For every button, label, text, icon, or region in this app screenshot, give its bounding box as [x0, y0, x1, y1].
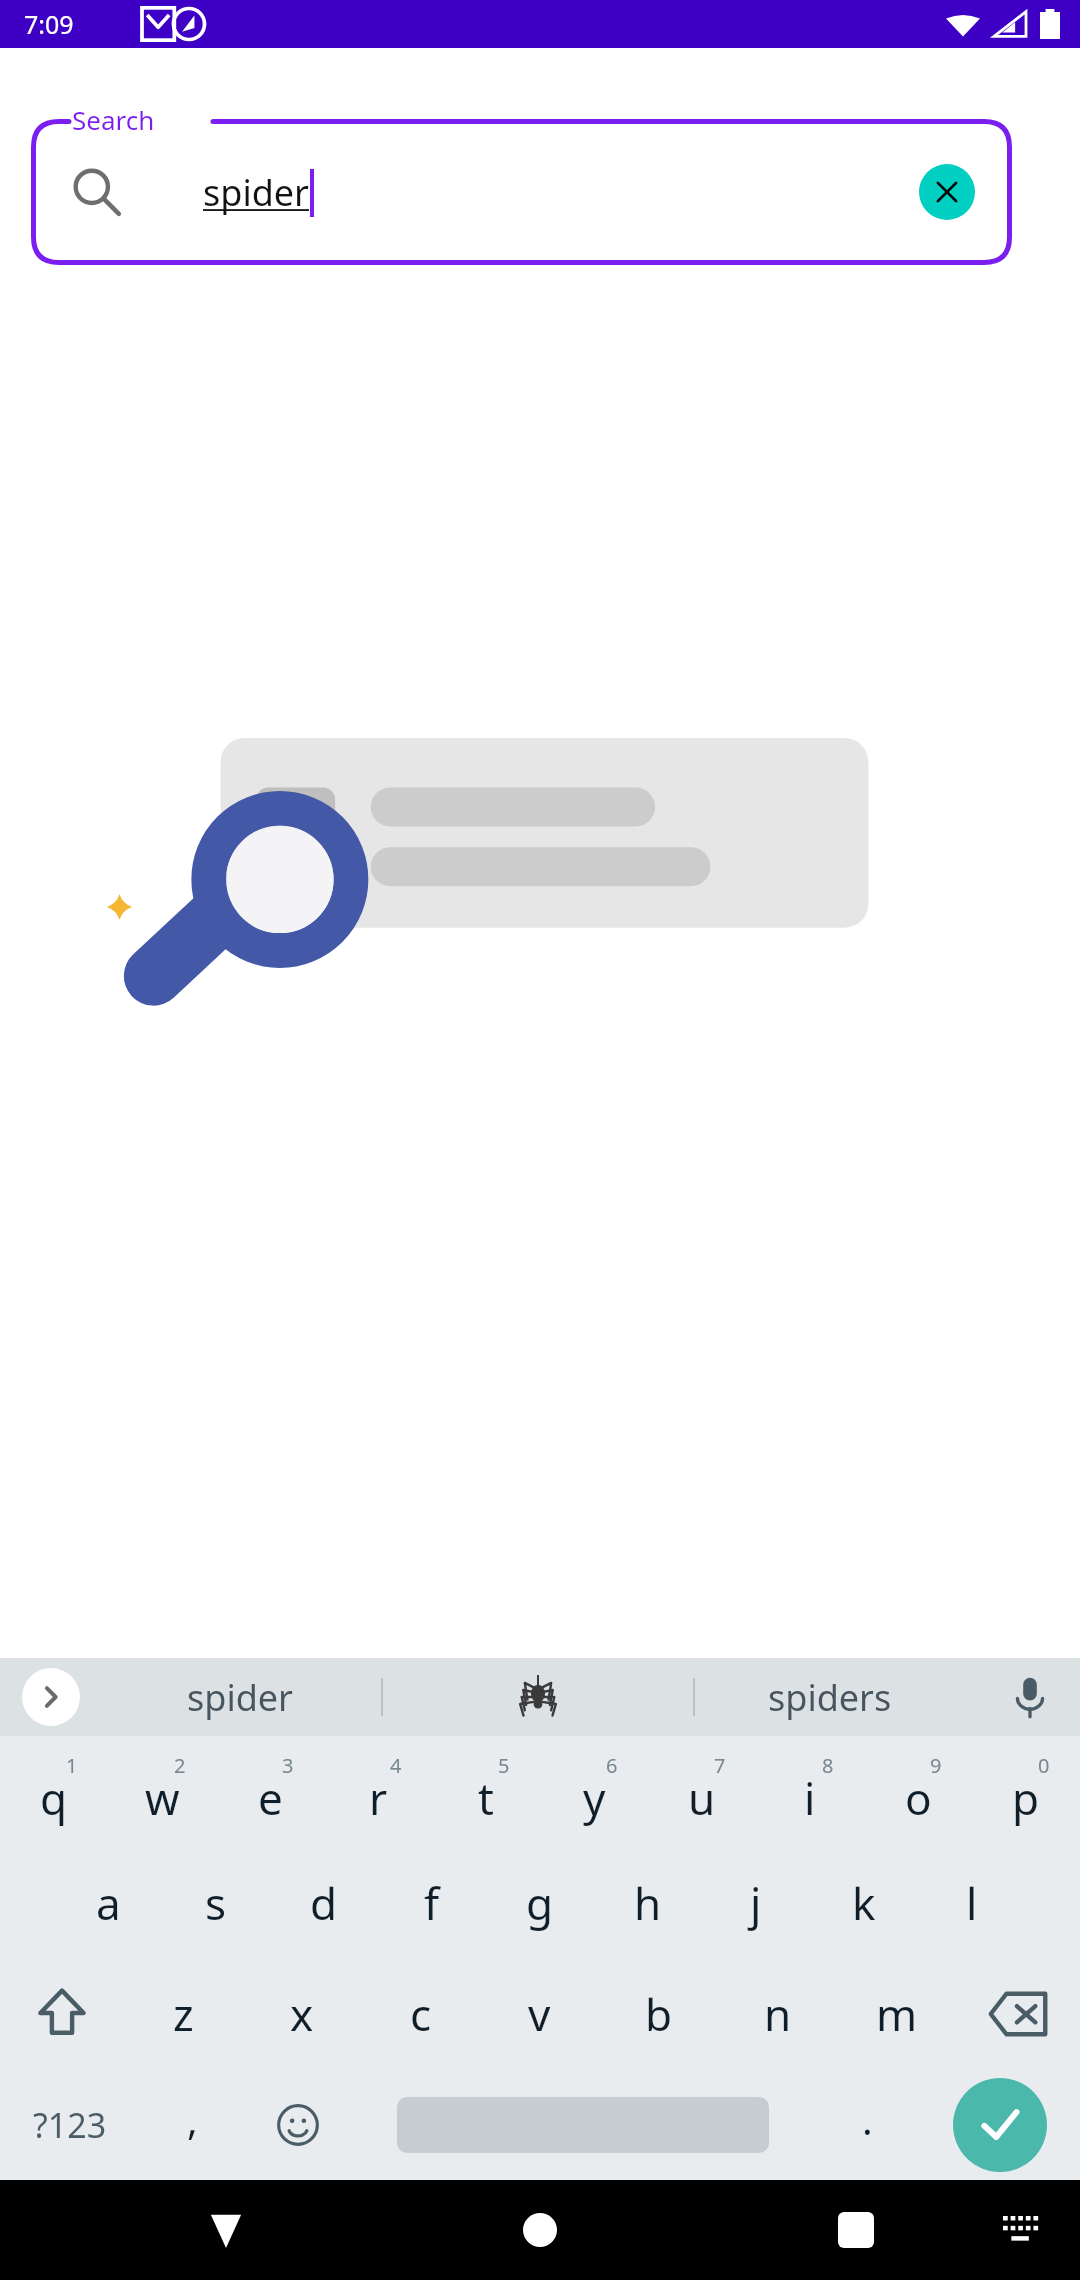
button[interactable]: c: [361, 1958, 480, 2069]
staticText: y: [583, 1768, 606, 1828]
button[interactable]: x: [242, 1958, 361, 2069]
staticText: e: [258, 1768, 283, 1828]
button[interactable]: m: [837, 1958, 956, 2069]
button[interactable]: Switch keyboard: [982, 2190, 1062, 2270]
staticText: Search: [72, 102, 155, 137]
button[interactable]: 3: [216, 1736, 324, 1847]
button[interactable]: Emoji: [245, 2069, 350, 2180]
staticText: u: [688, 1768, 716, 1828]
staticText: n: [764, 1984, 792, 2044]
staticText: ?123: [33, 2102, 107, 2148]
button[interactable]: n: [718, 1958, 837, 2069]
button[interactable]: s: [162, 1847, 270, 1958]
button[interactable]: Expand suggestions: [22, 1668, 80, 1726]
button[interactable]: 0: [972, 1736, 1080, 1847]
button[interactable]: z: [124, 1958, 242, 2069]
staticText: 7: [714, 1752, 726, 1779]
staticText: m: [876, 1984, 918, 2044]
button[interactable]: Recent apps: [810, 2184, 902, 2276]
staticText: 9: [930, 1752, 942, 1779]
staticText: 0: [1038, 1752, 1050, 1779]
button[interactable]: d: [270, 1847, 378, 1958]
staticText: a: [96, 1873, 121, 1933]
staticText: g: [526, 1873, 554, 1933]
staticText: i: [804, 1768, 816, 1828]
button[interactable]: v: [480, 1958, 599, 2069]
button[interactable]: Voice input: [980, 1658, 1080, 1736]
staticText: spiders: [768, 1673, 892, 1722]
button[interactable]: j: [702, 1847, 810, 1958]
staticText: h: [634, 1873, 662, 1933]
button[interactable]: 6: [540, 1736, 648, 1847]
button[interactable]: Back: [180, 2184, 272, 2276]
button[interactable]: 5: [432, 1736, 540, 1847]
button[interactable]: Enter: [920, 2069, 1080, 2180]
button[interactable]: ,: [140, 2069, 245, 2180]
button[interactable]: 8: [756, 1736, 864, 1847]
staticText: d: [310, 1873, 338, 1933]
button[interactable]: Backspace: [956, 1958, 1080, 2069]
staticText: c: [410, 1984, 432, 2044]
staticText: 2: [174, 1752, 186, 1779]
button[interactable]: Spider emoji: [383, 1658, 693, 1736]
button[interactable]: 2: [108, 1736, 216, 1847]
button[interactable]: Clear search: [919, 164, 975, 220]
staticText: q: [40, 1768, 68, 1828]
staticText: spider: [203, 168, 309, 217]
staticText: 6: [606, 1752, 618, 1779]
staticText: ,: [187, 2092, 198, 2146]
button[interactable]: Shift: [0, 1958, 124, 2069]
button[interactable]: b: [599, 1958, 718, 2069]
staticText: 3: [282, 1752, 294, 1779]
button[interactable]: 9: [864, 1736, 972, 1847]
staticText: w: [145, 1768, 180, 1828]
staticText: z: [173, 1984, 194, 2044]
button[interactable]: 7: [648, 1736, 756, 1847]
staticText: 7:09: [24, 7, 74, 41]
staticText: v: [528, 1984, 551, 2044]
staticText: spider: [187, 1673, 293, 1722]
button[interactable]: a: [54, 1847, 162, 1958]
button[interactable]: Home: [494, 2184, 586, 2276]
staticText: 5: [498, 1752, 510, 1779]
staticText: o: [905, 1768, 932, 1828]
staticText: 1: [66, 1752, 78, 1779]
staticText: k: [852, 1873, 876, 1933]
staticText: p: [1012, 1768, 1040, 1828]
button[interactable]: k: [810, 1847, 918, 1958]
button[interactable]: ?123: [0, 2069, 140, 2180]
button[interactable]: spiders: [695, 1658, 965, 1736]
staticText: s: [205, 1873, 227, 1933]
button[interactable]: spider: [31, 119, 1012, 265]
button[interactable]: 1: [0, 1736, 108, 1847]
staticText: 4: [390, 1752, 402, 1779]
button[interactable]: h: [594, 1847, 702, 1958]
button[interactable]: Space: [350, 2069, 815, 2180]
button[interactable]: 4: [324, 1736, 432, 1847]
button[interactable]: spider: [100, 1658, 380, 1736]
staticText: t: [478, 1768, 494, 1828]
staticText: f: [424, 1873, 440, 1933]
button[interactable]: l: [918, 1847, 1026, 1958]
staticText: 8: [822, 1752, 834, 1779]
button[interactable]: f: [378, 1847, 486, 1958]
staticText: j: [750, 1873, 762, 1933]
button[interactable]: .: [815, 2069, 920, 2180]
staticText: r: [369, 1768, 388, 1828]
button[interactable]: g: [486, 1847, 594, 1958]
staticText: b: [645, 1984, 673, 2044]
staticText: l: [966, 1873, 978, 1933]
staticText: .: [862, 2092, 873, 2146]
staticText: x: [290, 1984, 314, 2044]
